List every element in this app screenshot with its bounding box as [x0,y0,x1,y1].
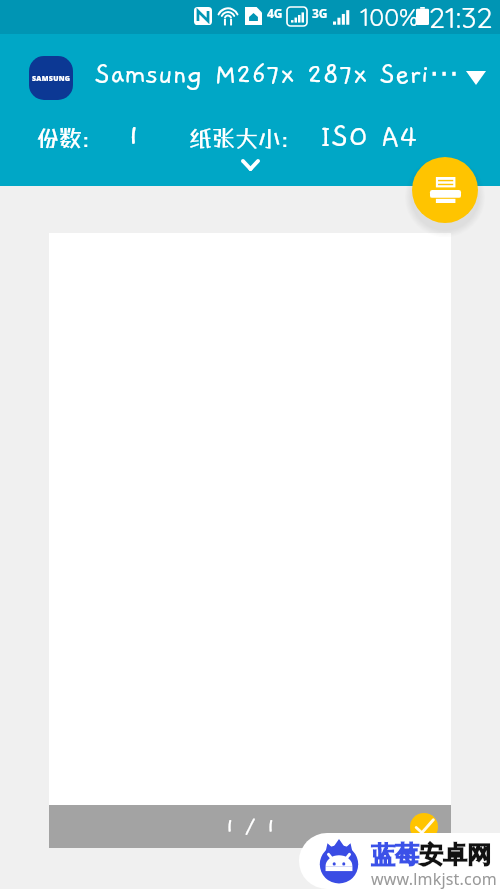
staticText: 100% [360,1,419,32]
staticText: www.lmkjst.com [371,868,497,889]
button[interactable]: 纸张大小： [189,120,418,154]
staticText: SAMSUNG [32,74,71,84]
staticText: 4G [267,5,283,21]
staticText: 1 [127,121,141,154]
button[interactable]: SAMSUNG [0,52,500,104]
button[interactable]: Print [412,157,478,223]
button[interactable]: Expand options [225,150,275,180]
button[interactable]: 份数： [36,120,141,154]
staticText: 蓝莓 [371,840,419,870]
staticText: 21:32 [429,0,493,33]
staticText: 纸张大小： [189,124,304,151]
staticText: 安卓网 [419,840,491,870]
button[interactable]: Page selected [410,813,438,841]
staticText: ISO A4 [320,121,418,154]
staticText: 3G [312,5,328,21]
staticText: 份数： [36,124,105,151]
staticText: Samsung M267x 287x Seri⋯ [95,55,460,90]
staticText: 1 / 1 [225,815,276,839]
